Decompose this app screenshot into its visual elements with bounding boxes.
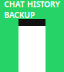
staticText: CHAT HISTORY BACKUP [4, 0, 60, 20]
